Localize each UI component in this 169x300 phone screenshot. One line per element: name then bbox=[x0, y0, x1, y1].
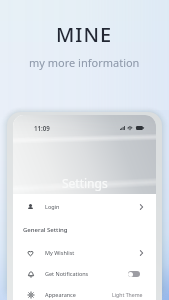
staticText: General Setting bbox=[23, 226, 68, 234]
button[interactable]: Toggle notifications bbox=[128, 271, 140, 277]
staticText: Get Notifications bbox=[45, 270, 89, 277]
staticText: MINE bbox=[56, 21, 113, 48]
staticText: Settings bbox=[62, 175, 108, 191]
other: Wi-Fi bbox=[127, 125, 133, 130]
staticText: 11:09 bbox=[34, 124, 50, 132]
staticText: my more information bbox=[29, 55, 140, 70]
button[interactable]: Appearance bbox=[13, 284, 156, 300]
other: Battery bbox=[136, 126, 144, 130]
other: Signal bbox=[120, 126, 125, 130]
button[interactable]: Get Notifications bbox=[13, 263, 156, 284]
staticText: My Wishlist bbox=[45, 249, 75, 256]
staticText: Appearance bbox=[45, 291, 76, 298]
staticText: Login bbox=[45, 203, 60, 210]
staticText: Light Theme bbox=[112, 291, 143, 298]
button[interactable]: My Wishlist bbox=[13, 242, 156, 263]
button[interactable]: Login bbox=[13, 196, 156, 217]
